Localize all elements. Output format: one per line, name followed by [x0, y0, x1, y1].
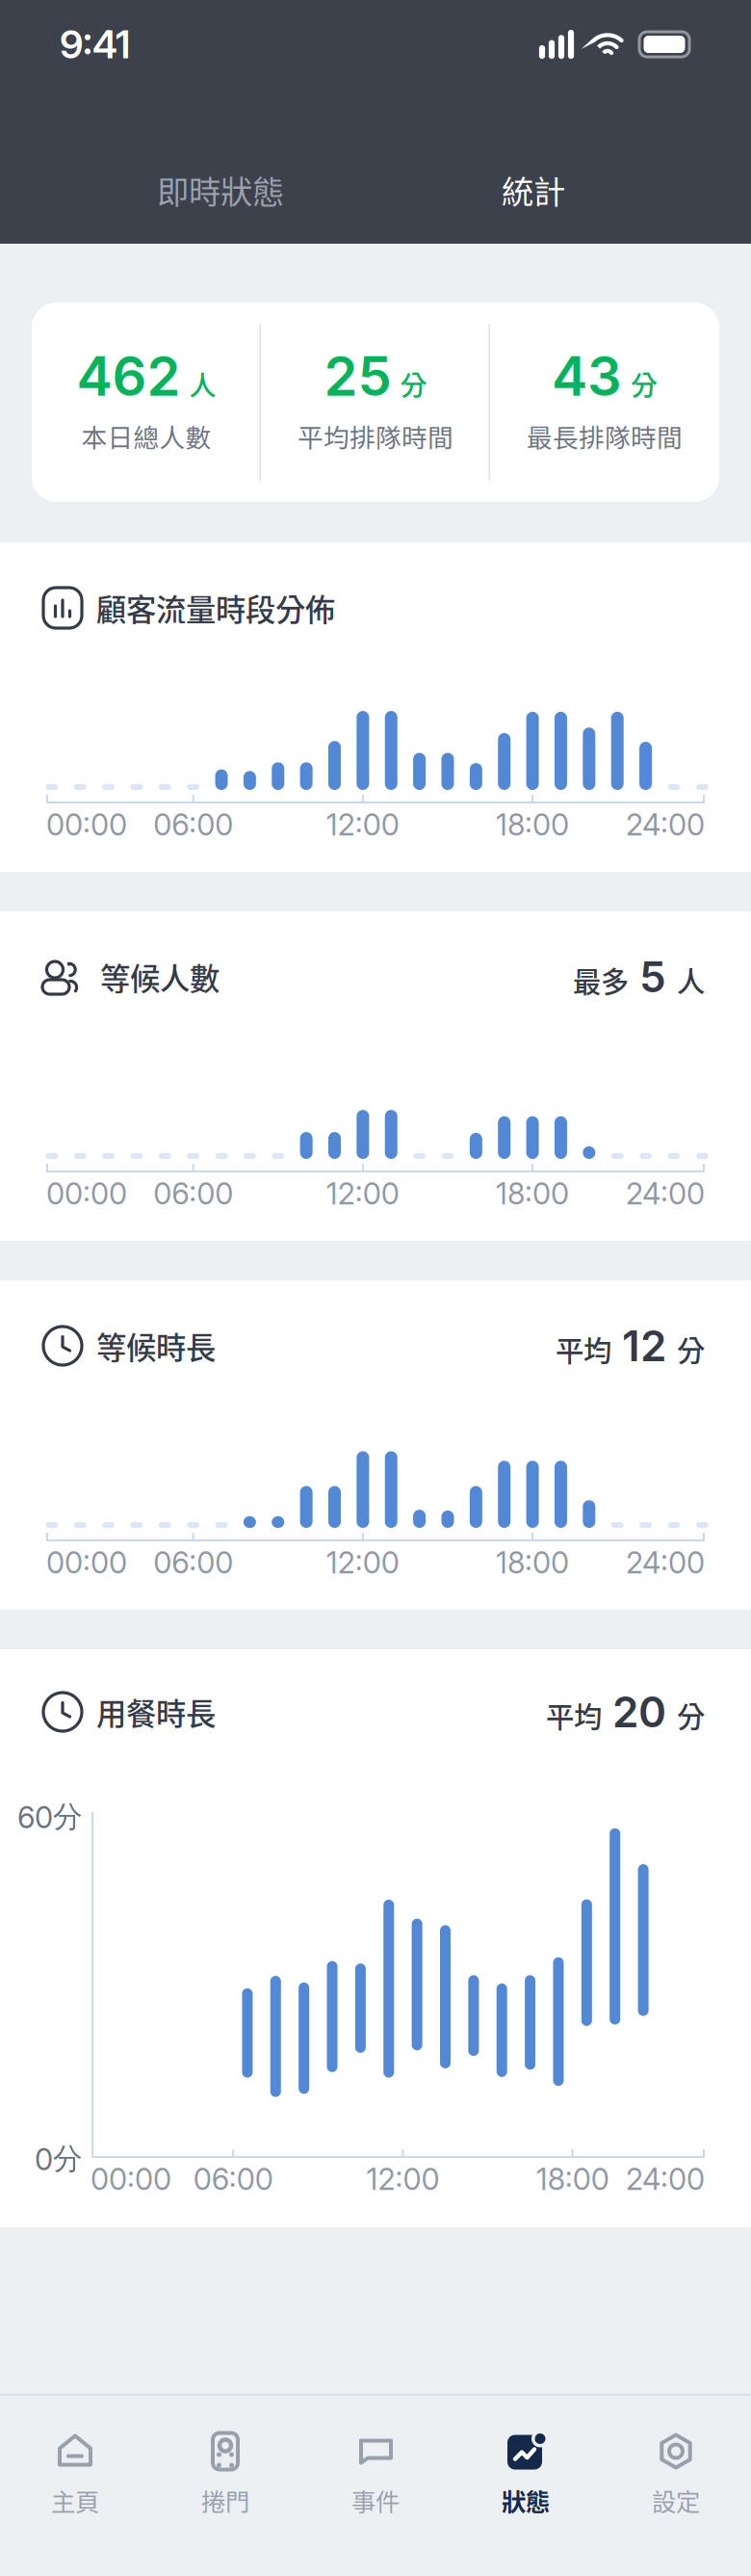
- staticText: 60分: [17, 1798, 83, 1835]
- staticText: 設定: [652, 2483, 700, 2518]
- staticText: 06:00: [153, 1545, 233, 1580]
- staticText: 18:00: [496, 1545, 569, 1580]
- staticText: 462: [77, 344, 181, 409]
- staticText: 00:00: [46, 1545, 127, 1580]
- staticText: 00:00: [46, 807, 127, 842]
- staticText: 捲門: [201, 2483, 249, 2518]
- staticText: 事件: [351, 2483, 400, 2518]
- staticText: 06:00: [153, 807, 233, 842]
- button[interactable]: 狀態: [451, 2419, 601, 2525]
- staticText: 顧客流量時段分佈: [96, 586, 335, 630]
- button[interactable]: 主頁: [0, 2419, 150, 2525]
- staticText: 狀態: [502, 2483, 550, 2518]
- staticText: 43: [552, 344, 622, 409]
- button[interactable]: 即時狀態: [110, 161, 331, 219]
- staticText: 12:00: [366, 2161, 439, 2197]
- staticText: 0分: [35, 2140, 83, 2177]
- staticText: 人: [677, 959, 705, 1000]
- staticText: 12:00: [326, 1176, 399, 1211]
- staticText: 24:00: [626, 2161, 705, 2197]
- staticText: 分: [677, 1695, 705, 1735]
- staticText: 用餐時長: [96, 1690, 216, 1734]
- button[interactable]: 統計: [456, 161, 610, 219]
- staticText: 20: [602, 1686, 677, 1737]
- staticText: 平均: [556, 1328, 611, 1369]
- button[interactable]: 設定: [601, 2419, 751, 2525]
- staticText: 最長排隊時間: [527, 417, 683, 455]
- staticText: 等候人數: [100, 955, 220, 999]
- staticText: 00:00: [46, 1176, 127, 1211]
- staticText: 分: [631, 365, 658, 404]
- staticText: 12:00: [326, 807, 399, 842]
- staticText: 18:00: [496, 807, 569, 842]
- staticText: 本日總人數: [81, 417, 211, 455]
- staticText: 24:00: [626, 1176, 705, 1211]
- staticText: 12:00: [326, 1545, 399, 1580]
- staticText: 平均排隊時間: [298, 417, 453, 455]
- button[interactable]: 捲門: [150, 2419, 300, 2525]
- staticText: 分: [400, 365, 427, 404]
- staticText: 5: [629, 951, 677, 1002]
- staticText: 9:41: [60, 21, 130, 68]
- staticText: 人: [189, 365, 216, 404]
- staticText: 分: [677, 1328, 705, 1369]
- staticText: 12: [611, 1320, 677, 1371]
- staticText: 18:00: [536, 2161, 609, 2197]
- staticText: 主頁: [51, 2483, 99, 2518]
- staticText: 即時狀態: [157, 167, 284, 213]
- staticText: 平均: [546, 1695, 602, 1735]
- staticText: 00:00: [91, 2161, 171, 2197]
- staticText: 最多: [573, 959, 629, 1000]
- staticText: 06:00: [193, 2161, 273, 2197]
- staticText: 06:00: [153, 1176, 233, 1211]
- staticText: 25: [324, 344, 391, 409]
- staticText: 18:00: [496, 1176, 569, 1211]
- staticText: 等候時長: [96, 1324, 216, 1368]
- button[interactable]: 事件: [300, 2419, 451, 2525]
- staticText: 統計: [502, 167, 565, 213]
- staticText: 24:00: [626, 1545, 705, 1580]
- staticText: 24:00: [626, 807, 705, 842]
